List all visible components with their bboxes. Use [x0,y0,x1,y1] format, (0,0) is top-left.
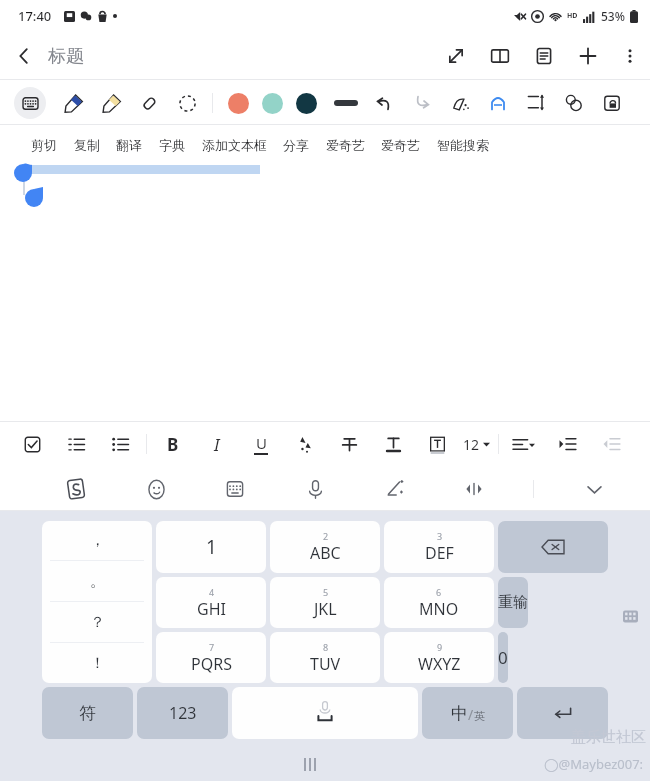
button[interactable]: Keyboard layout [215,469,255,509]
button[interactable]: Redo [403,84,441,122]
staticText: / [468,705,474,724]
button[interactable]: Shape fill [555,84,593,122]
button[interactable]: Color [221,86,255,120]
staticText: ， [90,531,105,550]
button[interactable]: Text recognition [479,84,517,122]
button[interactable]: 分享 [280,125,312,165]
button[interactable]: 翻译 [113,125,145,165]
button[interactable]: Strikethrough [327,422,371,466]
button[interactable]: ？ [42,602,152,642]
staticText: 9 [437,641,443,653]
button[interactable]: Text size [517,84,555,122]
staticText: HD [567,11,578,21]
button[interactable]: Enter [517,687,608,739]
button[interactable]: More options [610,36,650,76]
button[interactable]: Bold [151,422,195,466]
button[interactable]: 2 [270,521,380,573]
staticText: 添加文本框 [202,137,267,153]
staticText: B [167,433,179,456]
button[interactable]: Emoji [136,469,176,509]
staticText: 盖乐世社区 [571,728,646,747]
button[interactable]: Lock [593,84,631,122]
staticText: WXYZ [418,653,461,675]
button[interactable]: Cursor control [454,469,494,509]
button[interactable]: Back [0,32,48,80]
button[interactable]: 8 [270,632,380,683]
button[interactable]: Pen [54,84,92,122]
button[interactable]: 复制 [71,125,103,165]
button[interactable]: 5 [270,577,380,628]
button[interactable]: 12 [459,422,494,466]
staticText: 复制 [74,137,100,153]
button[interactable]: Space [232,687,418,739]
button[interactable]: Keyboard [14,87,46,119]
button[interactable]: Bulleted list [98,422,142,466]
button[interactable]: Italic [195,422,239,466]
button[interactable]: 爱奇艺 [378,125,423,165]
staticText: 智能搜索 [437,137,489,153]
button[interactable]: List [522,34,566,78]
button[interactable]: 3 [384,521,494,573]
button[interactable]: Selection [168,84,206,122]
button[interactable]: Eraser [130,84,168,122]
button[interactable]: Magic [441,84,479,122]
button[interactable]: Highlight [283,422,327,466]
button[interactable]: Highlighter [92,84,130,122]
staticText: 7 [209,641,215,653]
staticText: 重输 [498,593,528,612]
button[interactable]: 7 [156,632,266,683]
button[interactable]: Numbered list [54,422,98,466]
button[interactable]: Handwriting [374,469,414,509]
button[interactable]: Decrease indent [589,422,633,466]
button[interactable]: Align [501,422,545,466]
staticText: PQRS [191,653,232,675]
staticText: 123 [169,702,197,724]
staticText: 翻译 [116,137,142,153]
button[interactable]: Expand [434,34,478,78]
staticText: 4 [209,586,215,598]
button[interactable]: 字典 [156,125,188,165]
staticText: 0 [498,646,508,669]
staticText: 17:40 [18,7,52,25]
button[interactable]: ！ [42,643,152,683]
button[interactable]: 符 [42,687,133,739]
button[interactable]: 。 [42,561,152,601]
button[interactable]: 9 [384,632,494,683]
button[interactable]: 剪切 [28,125,60,165]
button[interactable]: Hide keyboard [574,469,614,509]
button[interactable]: Text background [415,422,459,466]
button[interactable]: ， [42,521,152,560]
button[interactable]: Keyboard size [620,606,640,626]
button[interactable]: 4 [156,577,266,628]
button[interactable]: Input method [56,469,96,509]
button[interactable]: Checklist [10,422,54,466]
staticText: 英 [474,709,485,723]
staticText: 53% [601,8,625,24]
staticText: 符 [79,703,96,724]
button[interactable]: Text color [371,422,415,466]
button[interactable]: Underline [239,422,283,466]
button[interactable]: Book view [478,34,522,78]
button[interactable]: Color [289,86,323,120]
button[interactable]: 1 [156,521,266,573]
staticText: DEF [425,542,454,564]
staticText: 5 [323,586,329,598]
button[interactable]: Stroke width [327,84,365,122]
button[interactable]: 6 [384,577,494,628]
button[interactable]: 中 [422,687,513,739]
staticText: TUV [310,653,341,675]
button[interactable]: Backspace [498,521,608,573]
button[interactable]: 智能搜索 [434,125,492,165]
button[interactable]: 0 [498,632,508,683]
button[interactable]: Undo [365,84,403,122]
button[interactable]: Voice input [295,469,335,509]
button[interactable]: Add [566,34,610,78]
button[interactable]: Color [255,86,289,120]
staticText: U [256,433,267,453]
staticText: 字典 [159,137,185,153]
button[interactable]: Increase indent [545,422,589,466]
button[interactable]: 123 [137,687,228,739]
button[interactable]: 爱奇艺 [323,125,368,165]
button[interactable]: 重输 [498,577,528,628]
button[interactable]: 添加文本框 [199,125,270,165]
